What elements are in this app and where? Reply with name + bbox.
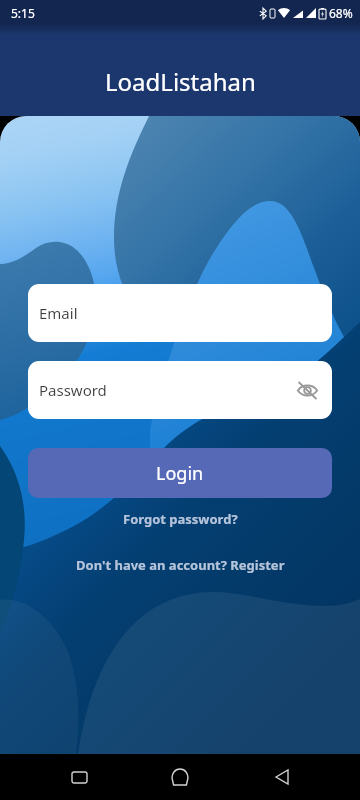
staticText: Password (39, 380, 107, 400)
staticText: Email (39, 303, 78, 323)
button[interactable]: Show password (292, 375, 322, 405)
staticText: 68% (329, 5, 353, 21)
button[interactable]: Email (28, 284, 332, 342)
button[interactable]: Password (28, 361, 332, 419)
button[interactable]: Login (28, 448, 332, 498)
staticText: 5:15 (11, 5, 35, 21)
button[interactable]: Recent apps (56, 754, 102, 800)
button[interactable]: Back (259, 754, 305, 800)
button[interactable]: Forgot password? (113, 505, 248, 533)
button[interactable]: Don't have an account? Register (66, 551, 295, 579)
staticText: Login (156, 461, 204, 486)
staticText: LoadListahan (105, 65, 256, 98)
button[interactable]: Home (157, 754, 203, 800)
